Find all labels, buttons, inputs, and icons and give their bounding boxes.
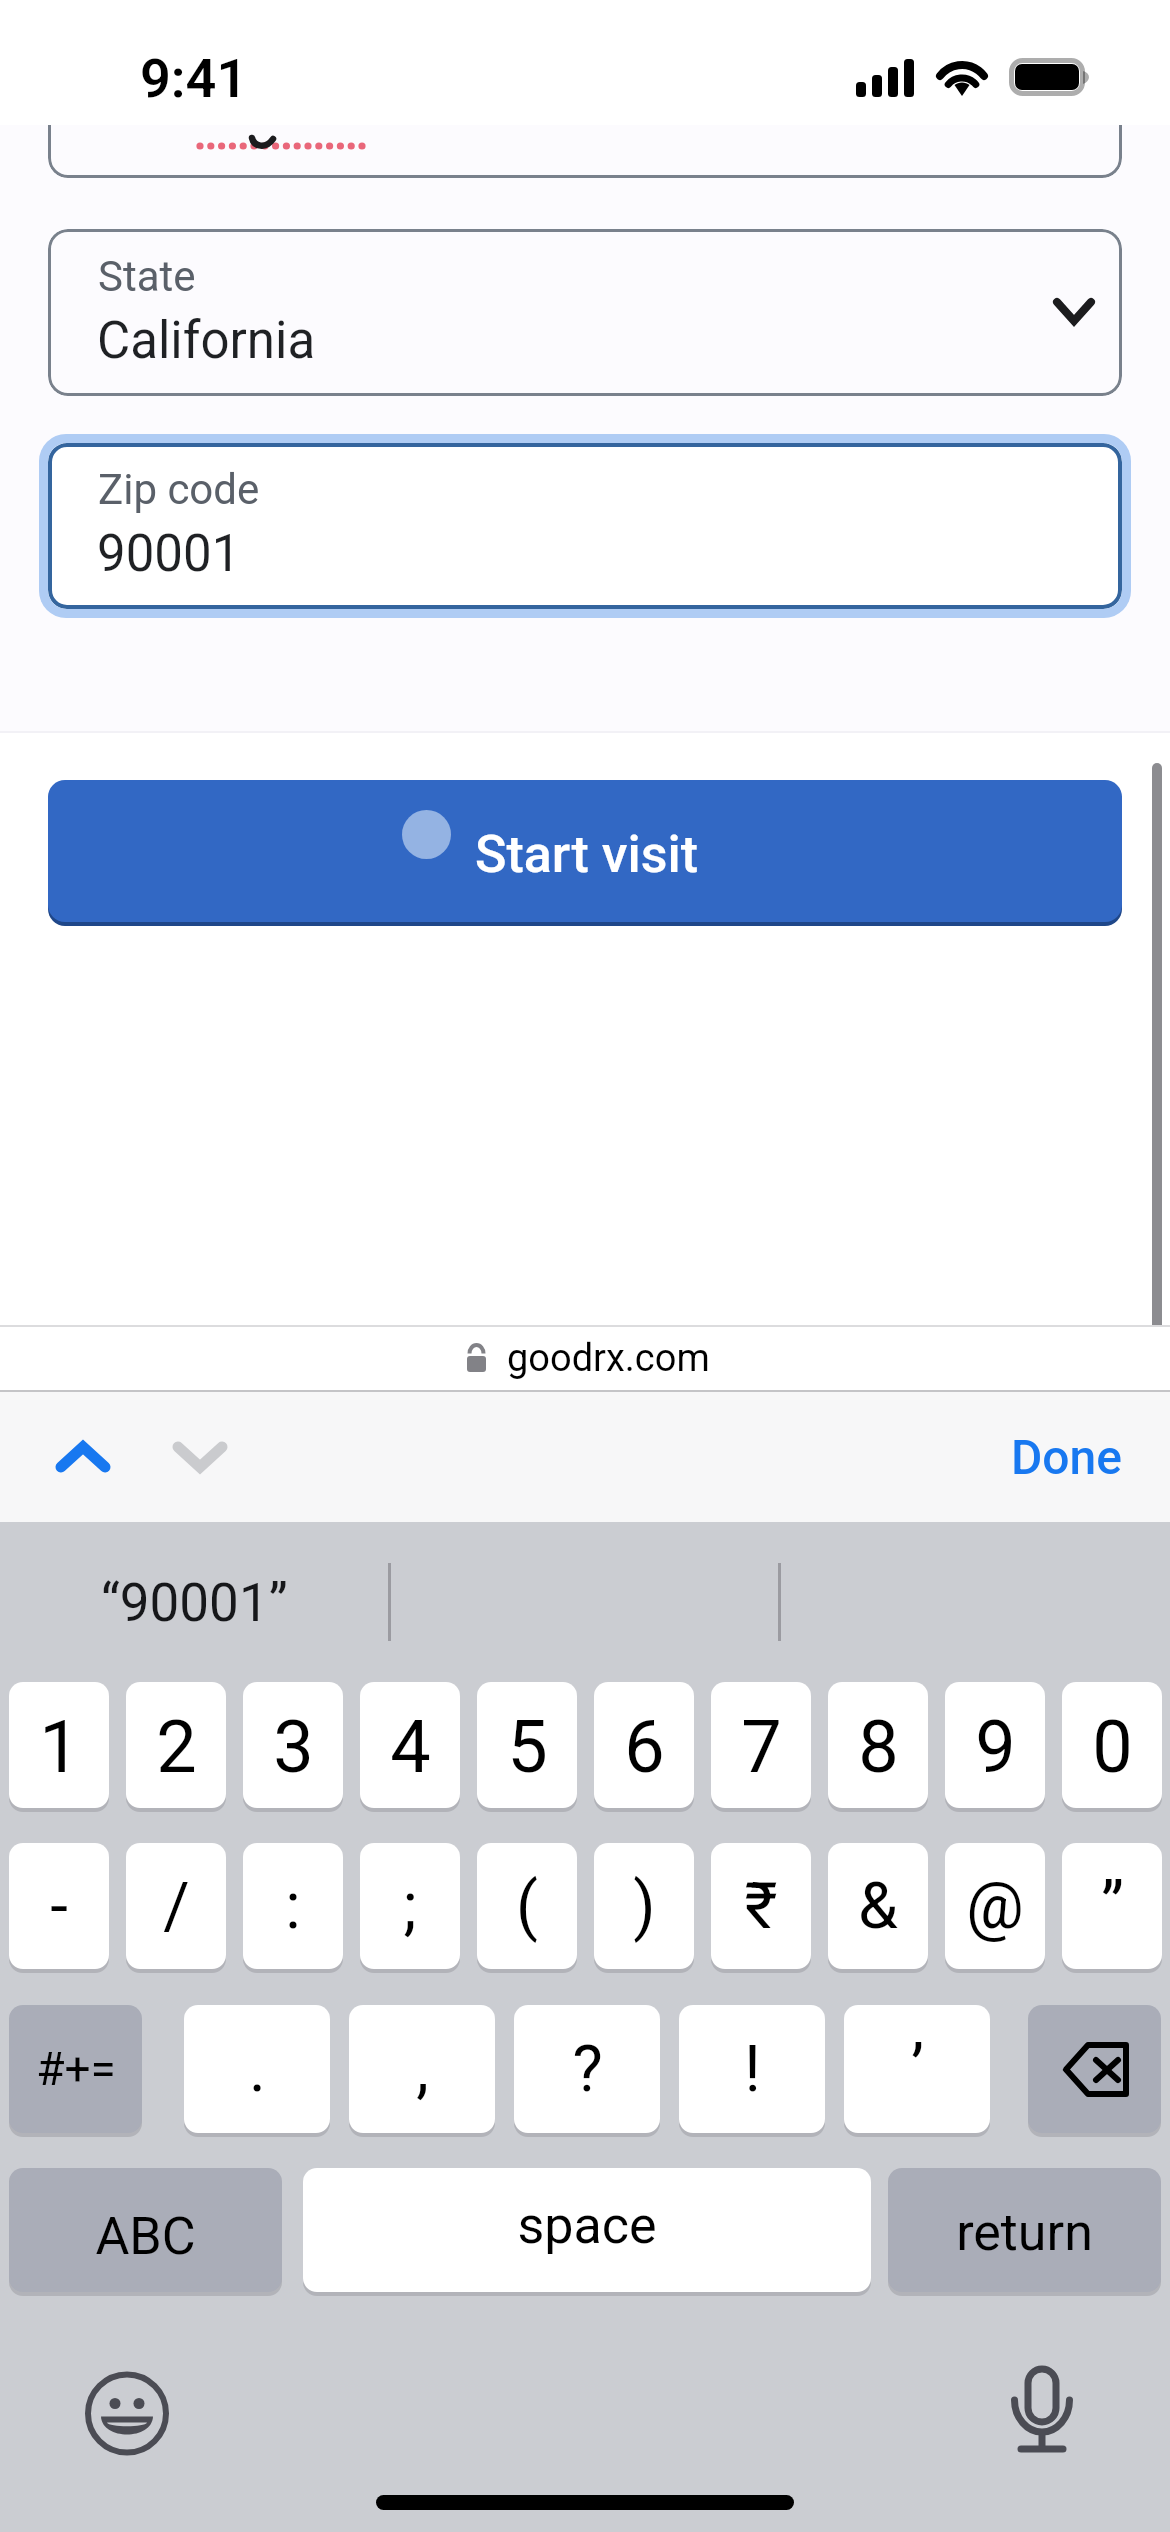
staticText: ’ bbox=[911, 2032, 924, 2107]
button[interactable]: Emoji keyboard bbox=[77, 2362, 177, 2465]
staticText: 3 bbox=[273, 1705, 314, 1789]
staticText: goodrx.com bbox=[507, 1336, 710, 1381]
staticText: State bbox=[98, 252, 196, 301]
staticText: return bbox=[956, 2202, 1093, 2263]
staticText: ABC bbox=[95, 2206, 196, 2267]
button[interactable]: ₹ bbox=[711, 1843, 811, 1969]
button[interactable]: ’ bbox=[844, 2005, 990, 2133]
staticText: / bbox=[163, 1869, 190, 1944]
staticText: ” bbox=[1101, 1869, 1124, 1944]
button[interactable]: Done bbox=[981, 1409, 1170, 1505]
staticText: ; bbox=[403, 1869, 417, 1944]
staticText: space bbox=[517, 2195, 657, 2256]
button[interactable]: . bbox=[184, 2005, 330, 2133]
button[interactable]: ” bbox=[1062, 1843, 1162, 1969]
button[interactable]: / bbox=[126, 1843, 226, 1969]
staticText: : bbox=[285, 1869, 301, 1944]
button[interactable]: return bbox=[888, 2168, 1161, 2292]
staticText: 90001 bbox=[97, 524, 241, 584]
button[interactable]: 2 bbox=[126, 1682, 226, 1808]
button[interactable]: Zip code bbox=[39, 434, 1131, 618]
staticText: 4 bbox=[390, 1705, 431, 1789]
button[interactable]: 3 bbox=[243, 1682, 343, 1808]
staticText: Done bbox=[1011, 1429, 1122, 1485]
staticText: 2 bbox=[156, 1705, 197, 1789]
button[interactable]: 5 bbox=[477, 1682, 577, 1808]
staticText: & bbox=[858, 1869, 898, 1944]
button[interactable]: ! bbox=[679, 2005, 825, 2133]
button[interactable]: : bbox=[243, 1843, 343, 1969]
button[interactable]: 0 bbox=[1062, 1682, 1162, 1808]
staticText: 8 bbox=[858, 1705, 899, 1789]
button[interactable]: 6 bbox=[594, 1682, 694, 1808]
button[interactable]: ; bbox=[360, 1843, 460, 1969]
staticText: Start visit bbox=[475, 824, 699, 885]
staticText: 6 bbox=[624, 1705, 665, 1789]
button[interactable]: ) bbox=[594, 1843, 694, 1969]
button[interactable] bbox=[1028, 2005, 1161, 2133]
staticText: 5 bbox=[507, 1705, 548, 1789]
staticText: 7 bbox=[741, 1705, 782, 1789]
button[interactable]: Dictation bbox=[992, 2357, 1092, 2467]
button[interactable]: Start visit bbox=[48, 780, 1122, 922]
button[interactable]: space bbox=[303, 2168, 871, 2292]
button[interactable]: Previous field bbox=[23, 1412, 143, 1502]
button[interactable]: ? bbox=[514, 2005, 660, 2133]
staticText: ! bbox=[744, 2032, 761, 2107]
button[interactable]: 8 bbox=[828, 1682, 928, 1808]
staticText: 9:41 bbox=[140, 47, 248, 110]
staticText: California bbox=[97, 311, 316, 371]
button[interactable]: 9 bbox=[945, 1682, 1045, 1808]
button[interactable]: ( bbox=[477, 1843, 577, 1969]
button[interactable]: ABC bbox=[9, 2168, 282, 2292]
staticText: @ bbox=[966, 1869, 1024, 1944]
staticText: . bbox=[249, 2032, 266, 2107]
staticText: ( bbox=[516, 1869, 538, 1944]
staticText: “90001” bbox=[101, 1572, 288, 1634]
staticText: - bbox=[50, 1869, 68, 1944]
staticText: Zip code bbox=[98, 465, 260, 514]
button[interactable]: @ bbox=[945, 1843, 1045, 1969]
button[interactable]: State bbox=[48, 229, 1122, 396]
staticText: , bbox=[416, 2032, 429, 2107]
button[interactable]: , bbox=[349, 2005, 495, 2133]
button[interactable]: 1 bbox=[9, 1682, 109, 1808]
button[interactable]: & bbox=[828, 1843, 928, 1969]
staticText: 1 bbox=[39, 1705, 80, 1789]
staticText: ? bbox=[572, 2032, 603, 2107]
staticText: ) bbox=[633, 1869, 656, 1944]
button[interactable]: 4 bbox=[360, 1682, 460, 1808]
staticText: #+= bbox=[36, 2042, 116, 2096]
button[interactable]: - bbox=[9, 1843, 109, 1969]
staticText: ₹ bbox=[744, 1869, 778, 1944]
button[interactable]: Next field bbox=[140, 1412, 260, 1502]
button[interactable]: #+= bbox=[9, 2005, 142, 2133]
staticText: 9 bbox=[975, 1705, 1016, 1789]
staticText: 0 bbox=[1092, 1705, 1133, 1789]
button[interactable]: 7 bbox=[711, 1682, 811, 1808]
